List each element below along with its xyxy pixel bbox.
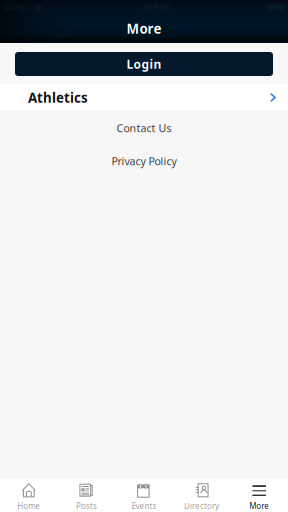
staticText: Privacy Policy — [111, 154, 176, 168]
button[interactable]: Events — [115, 477, 173, 512]
staticText: Home — [17, 501, 40, 511]
staticText: Directory — [184, 501, 219, 511]
staticText: Contact Us — [116, 121, 171, 135]
button[interactable]: Home — [0, 477, 58, 512]
staticText: Events — [131, 501, 156, 511]
staticText: Athletics — [28, 89, 88, 106]
button[interactable]: Contact Us — [0, 117, 288, 139]
staticText: Carrier — [4, 2, 30, 13]
staticText: More — [126, 20, 161, 37]
staticText: 2:39 PM — [141, 2, 172, 13]
button[interactable]: Directory — [173, 477, 230, 512]
button[interactable]: Athletics — [0, 84, 288, 111]
button[interactable]: Privacy Policy — [0, 150, 288, 172]
staticText: Posts — [76, 501, 97, 511]
button[interactable]: More — [230, 477, 288, 512]
staticText: Login — [126, 56, 161, 72]
button[interactable]: Login — [0, 52, 288, 76]
staticText: More — [249, 501, 269, 511]
button[interactable]: Posts — [58, 477, 115, 512]
